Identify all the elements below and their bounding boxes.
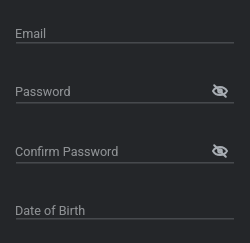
button[interactable]: Confirm Password [0,120,250,180]
staticText: Email [15,26,47,41]
staticText: Password [15,84,71,99]
button[interactable]: Email [0,0,250,60]
button[interactable]: Password [0,60,250,120]
staticText: Confirm Password [15,144,119,159]
staticText: Date of Birth [15,203,86,218]
button[interactable]: Toggle password visibility [208,139,232,163]
button[interactable]: Date of Birth [0,180,250,243]
button[interactable]: Toggle password visibility [208,79,232,103]
